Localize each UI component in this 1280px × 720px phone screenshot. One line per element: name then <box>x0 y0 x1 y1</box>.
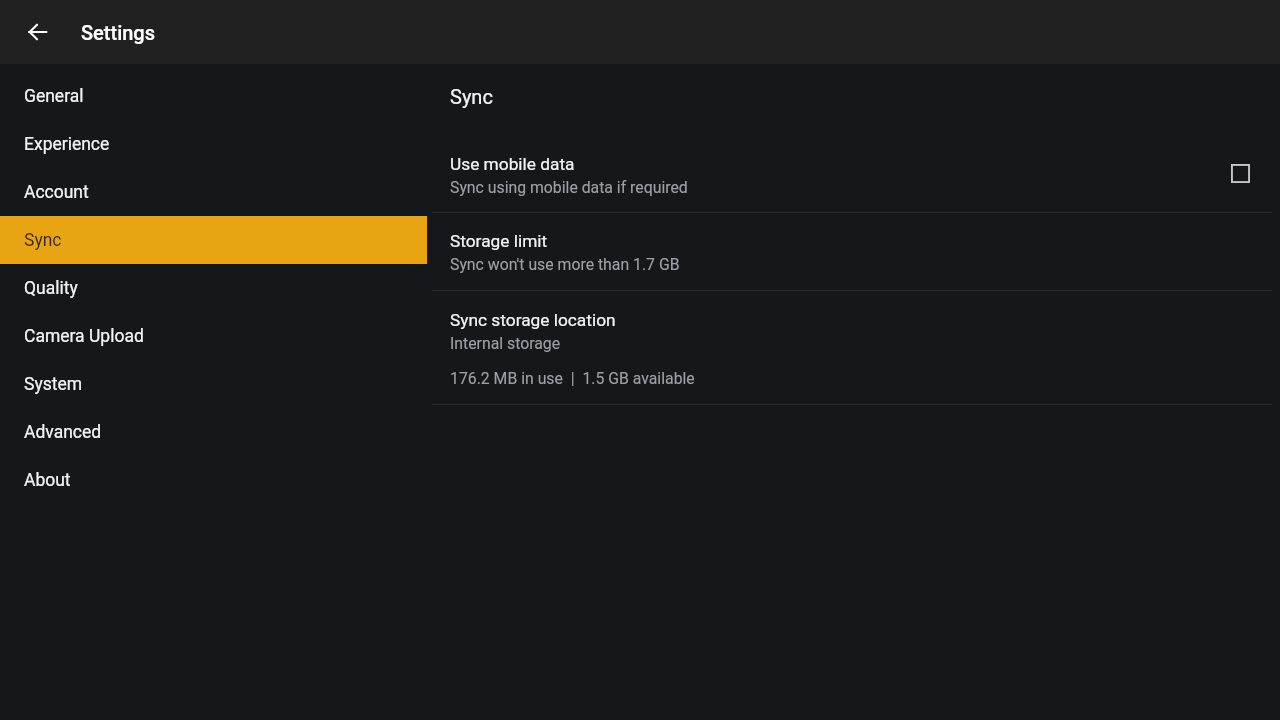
button[interactable]: About <box>0 456 427 504</box>
button[interactable]: System <box>0 360 427 408</box>
button[interactable]: Back <box>14 8 62 56</box>
button[interactable]: Camera Upload <box>0 312 427 360</box>
button[interactable]: Account <box>0 168 427 216</box>
staticText: Sync storage location <box>450 310 616 330</box>
button[interactable]: Storage limit <box>427 213 1280 290</box>
button[interactable]: Use mobile data toggle <box>1220 153 1260 193</box>
staticText: Sync using mobile data if required <box>450 178 688 197</box>
staticText: Camera Upload <box>24 326 144 347</box>
button[interactable]: General <box>0 72 427 120</box>
button[interactable]: Sync storage location <box>427 291 1280 404</box>
staticText: Quality <box>24 278 78 299</box>
staticText: General <box>24 86 84 107</box>
staticText: Sync <box>24 230 62 251</box>
staticText: Internal storage <box>450 334 561 353</box>
staticText: Storage limit <box>450 231 548 251</box>
staticText: Experience <box>24 134 110 155</box>
button[interactable]: Use mobile data <box>427 146 1280 212</box>
staticText: Settings <box>81 21 156 44</box>
staticText: Use mobile data <box>450 154 575 174</box>
staticText: Sync won't use more than 1.7 GB <box>450 255 680 274</box>
staticText: About <box>24 470 71 491</box>
staticText: Sync <box>450 85 493 108</box>
staticText: Advanced <box>24 422 102 443</box>
button[interactable]: Quality <box>0 264 427 312</box>
button[interactable]: Experience <box>0 120 427 168</box>
staticText: System <box>24 374 83 395</box>
staticText: Account <box>24 182 89 203</box>
button[interactable]: Sync <box>0 216 427 264</box>
button[interactable]: Advanced <box>0 408 427 456</box>
staticText: 176.2 MB in use | 1.5 GB available <box>450 369 695 388</box>
